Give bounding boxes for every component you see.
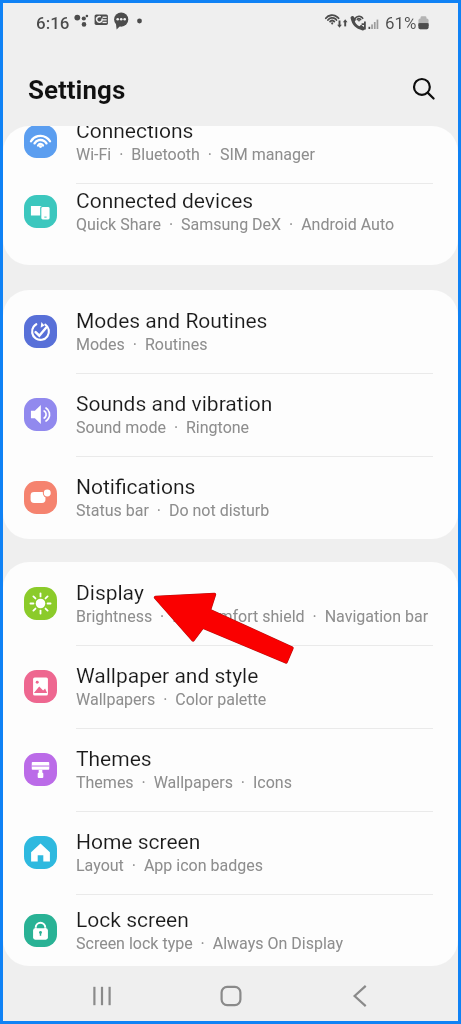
staticText: Settings bbox=[28, 75, 126, 105]
button[interactable]: Lock screen bbox=[3, 894, 458, 966]
button[interactable]: Sounds and vibration bbox=[3, 373, 458, 456]
staticText: Brightness · Eye comfort shield · Naviga… bbox=[76, 607, 429, 626]
staticText: Sound mode · Ringtone bbox=[76, 418, 250, 437]
staticText: 6:16 bbox=[36, 13, 70, 33]
button[interactable]: Notifications bbox=[3, 456, 458, 539]
button[interactable]: Search bbox=[401, 66, 447, 112]
button[interactable]: Home screen bbox=[3, 811, 458, 894]
staticText: Lock screen bbox=[76, 908, 189, 933]
button[interactable]: Home bbox=[209, 974, 253, 1018]
staticText: Themes · Wallpapers · Icons bbox=[76, 773, 292, 792]
button[interactable]: Wallpaper and style bbox=[3, 645, 458, 728]
button[interactable]: Themes bbox=[3, 728, 458, 811]
staticText: Themes bbox=[76, 747, 152, 772]
staticText: Connections bbox=[76, 126, 194, 144]
staticText: Quick Share · Samsung DeX · Android Auto bbox=[76, 215, 395, 234]
staticText: Connected devices bbox=[76, 189, 254, 214]
staticText: Sounds and vibration bbox=[76, 392, 273, 417]
staticText: Modes · Routines bbox=[76, 335, 208, 354]
staticText: Wi-Fi · Bluetooth · SIM manager bbox=[76, 145, 315, 164]
button[interactable]: Recent apps bbox=[80, 974, 124, 1018]
staticText: Screen lock type · Always On Display bbox=[76, 934, 343, 953]
staticText: Layout · App icon badges bbox=[76, 856, 263, 875]
button[interactable]: Back bbox=[338, 974, 382, 1018]
staticText: Status bar · Do not disturb bbox=[76, 501, 270, 520]
staticText: Notifications bbox=[76, 475, 196, 500]
staticText: Display bbox=[76, 581, 144, 606]
button[interactable]: Modes and Routines bbox=[3, 290, 458, 373]
button[interactable]: Connections bbox=[3, 126, 458, 183]
button[interactable]: Display bbox=[3, 562, 458, 645]
staticText: Wallpapers · Color palette bbox=[76, 690, 267, 709]
staticText: Home screen bbox=[76, 830, 201, 855]
staticText: Modes and Routines bbox=[76, 309, 268, 334]
staticText: Wallpaper and style bbox=[76, 664, 259, 689]
button[interactable]: Connected devices bbox=[3, 183, 458, 239]
staticText: 61% bbox=[385, 13, 417, 33]
